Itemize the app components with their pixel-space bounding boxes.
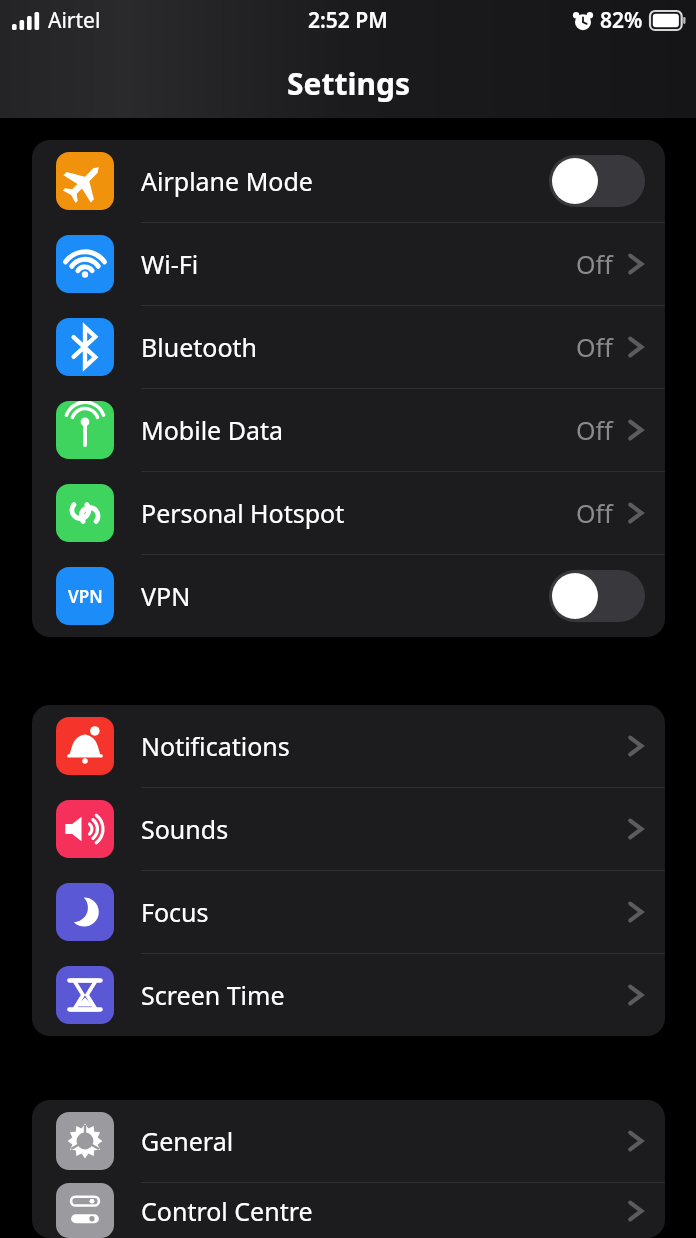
button[interactable]: VPN	[32, 555, 665, 637]
staticText: Notifications	[141, 729, 627, 763]
staticText: Personal Hotspot	[141, 496, 576, 530]
button[interactable]: Mobile Data	[32, 389, 665, 471]
staticText: Off	[576, 496, 613, 530]
button[interactable]: Focus	[32, 871, 665, 953]
staticText: Airtel	[48, 6, 101, 35]
staticText: General	[141, 1124, 627, 1158]
staticText: Screen Time	[141, 978, 627, 1012]
button[interactable]: Notifications	[32, 705, 665, 787]
staticText: Wi-Fi	[141, 247, 576, 281]
staticText: VPN	[141, 579, 549, 613]
staticText: Off	[576, 330, 613, 364]
staticText: Bluetooth	[141, 330, 576, 364]
button[interactable]: Bluetooth	[32, 306, 665, 388]
staticText: Settings	[287, 63, 410, 104]
button[interactable]: Airplane Mode	[32, 140, 665, 222]
button[interactable]: Wi-Fi	[32, 223, 665, 305]
staticText: Sounds	[141, 812, 627, 846]
staticText: Airplane Mode	[141, 164, 549, 198]
staticText: Off	[576, 413, 613, 447]
button[interactable]: Personal Hotspot	[32, 472, 665, 554]
staticText: 2:52 PM	[308, 6, 388, 35]
button[interactable]: Sounds	[32, 788, 665, 870]
staticText: Mobile Data	[141, 413, 576, 447]
staticText: Focus	[141, 895, 627, 929]
button[interactable]: Control Centre	[32, 1183, 665, 1238]
staticText: 82%	[600, 6, 643, 35]
button[interactable]: Screen Time	[32, 954, 665, 1036]
staticText: VPN	[68, 585, 103, 608]
button[interactable]: General	[32, 1100, 665, 1182]
staticText: Control Centre	[141, 1194, 627, 1228]
staticText: Off	[576, 247, 613, 281]
